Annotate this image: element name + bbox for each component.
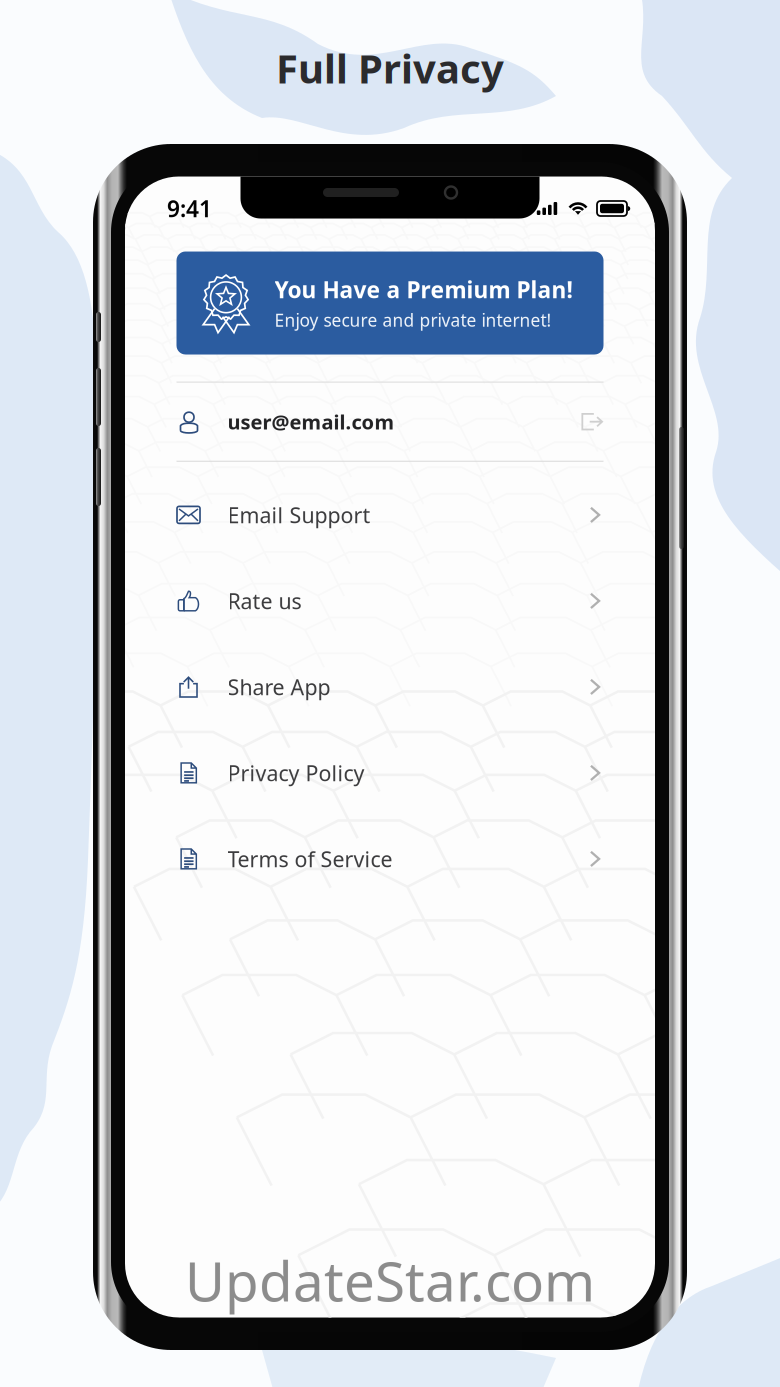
staticText: user@email.com: [227, 408, 394, 435]
button[interactable]: Share App: [176, 644, 603, 730]
staticText: Email Support: [227, 501, 370, 529]
button[interactable]: Rate us: [176, 558, 603, 644]
staticText: Privacy Policy: [227, 759, 364, 787]
staticText: Full Privacy: [276, 41, 504, 94]
staticText: 9:41: [167, 193, 212, 223]
staticText: UpdateStar.com: [185, 1244, 595, 1316]
button[interactable]: Privacy Policy: [176, 730, 603, 816]
button[interactable]: Terms of Service: [176, 816, 603, 902]
staticText: Terms of Service: [227, 845, 392, 873]
button[interactable]: user@email.com: [176, 383, 603, 461]
staticText: Rate us: [227, 587, 301, 615]
button[interactable]: Email Support: [176, 472, 603, 558]
staticText: You Have a Premium Plan!: [274, 274, 572, 304]
staticText: Enjoy secure and private internet!: [274, 308, 551, 331]
staticText: Share App: [227, 673, 330, 701]
